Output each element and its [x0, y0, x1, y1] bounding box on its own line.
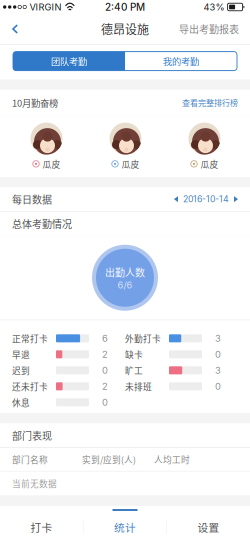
staticText: 瓜皮 [121, 158, 139, 170]
staticText: 旷工 [125, 364, 143, 377]
staticText: 早退 [12, 348, 30, 361]
staticText: 还未打卡 [12, 380, 48, 393]
staticText: 0 [102, 365, 108, 376]
button[interactable]: 统计 [83, 506, 166, 548]
staticText: 未排班 [125, 380, 152, 393]
staticText: 瓜皮 [200, 158, 218, 170]
staticText: 当前无数据 [12, 477, 57, 490]
staticText: 打卡 [30, 519, 52, 535]
staticText: 部门名称 [12, 453, 48, 466]
button[interactable]: 打卡 [0, 506, 83, 548]
staticText: 缺卡 [125, 348, 143, 361]
staticText: 设置 [197, 519, 219, 535]
staticText: 统计 [114, 519, 136, 535]
staticText: 10月勤奋榜 [12, 96, 58, 109]
staticText: 0 [102, 397, 108, 408]
staticText: 瓜皮 [42, 158, 60, 170]
staticText: 2 [102, 349, 108, 360]
staticText: 查看完整排行榜 [182, 97, 238, 108]
staticText: 3 [215, 333, 221, 344]
staticText: 2016-10-14 [183, 194, 229, 204]
staticText: 6 [102, 333, 108, 344]
button[interactable]: 后一天 [234, 196, 238, 202]
staticText: 德昂设施 [101, 20, 149, 38]
staticText: 人均工时 [154, 453, 190, 466]
button[interactable]: 查看完整排行榜 [182, 97, 238, 108]
staticText: 迟到 [12, 364, 30, 377]
staticText: 0 [215, 349, 221, 360]
staticText: 每日数据 [12, 192, 52, 206]
staticText: 正常打卡 [12, 332, 48, 345]
staticText: 总体考勤情况 [12, 216, 72, 231]
staticText: 休息 [12, 396, 30, 409]
staticText: 团队考勤 [51, 54, 87, 68]
staticText: 出勤人数 [105, 265, 145, 279]
staticText: 外勤打卡 [125, 332, 161, 345]
staticText: 部门表现 [12, 428, 52, 443]
staticText: VIRGIN [26, 1, 61, 13]
staticText: 导出考勤报表 [179, 22, 239, 36]
staticText: 2 [102, 381, 108, 392]
staticText: 我的考勤 [163, 54, 199, 68]
staticText: 实到/应到(人) [82, 453, 136, 466]
button[interactable]: 团队考勤 [13, 52, 125, 71]
button[interactable]: 前一天 [174, 196, 178, 202]
button[interactable]: 返回 [0, 14, 30, 44]
staticText: 2:40 PM [105, 1, 145, 13]
button[interactable]: 设置 [167, 506, 250, 548]
staticText: 43% [204, 1, 225, 13]
staticText: 3 [215, 365, 221, 376]
staticText: 0 [215, 381, 221, 392]
staticText: 6/6 [117, 279, 132, 291]
button[interactable]: 我的考勤 [125, 52, 237, 71]
button[interactable]: 导出考勤报表 [179, 14, 250, 44]
